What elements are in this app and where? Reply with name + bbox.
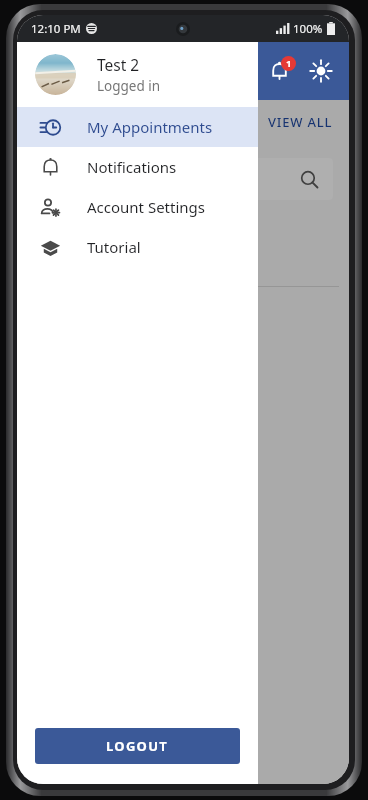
staticText: Test 2 [97,54,140,75]
button[interactable] [33,158,333,200]
button[interactable]: Brightness [301,51,341,91]
button[interactable]: VIEW ALL [268,113,333,131]
button[interactable]: My Appointments [17,107,258,147]
button[interactable]: LOGOUT [35,728,240,764]
button[interactable]: Notifications [259,51,299,91]
staticText: No date [33,251,86,270]
staticText: VIEW ALL [268,113,333,131]
staticText: LOGOUT [106,737,169,755]
staticText: My Appointments [87,117,213,137]
staticText: 1 [286,57,292,70]
staticText: Account Settings [87,197,205,217]
staticText: Tutorial [87,237,141,257]
staticText: 100% [293,21,323,37]
button[interactable]: Account Settings [17,187,258,227]
button[interactable]: App logo [78,53,115,90]
staticText: 12:10 PM [31,21,81,37]
button[interactable]: Test 2 [17,42,258,107]
button[interactable]: Tutorial [17,227,258,267]
staticText: Notifications [87,157,177,177]
button[interactable]: Notifications [17,147,258,187]
staticText: Logged in [97,77,161,95]
staticText: Upcoming appointment [33,228,191,247]
button[interactable]: Profile [27,53,64,90]
